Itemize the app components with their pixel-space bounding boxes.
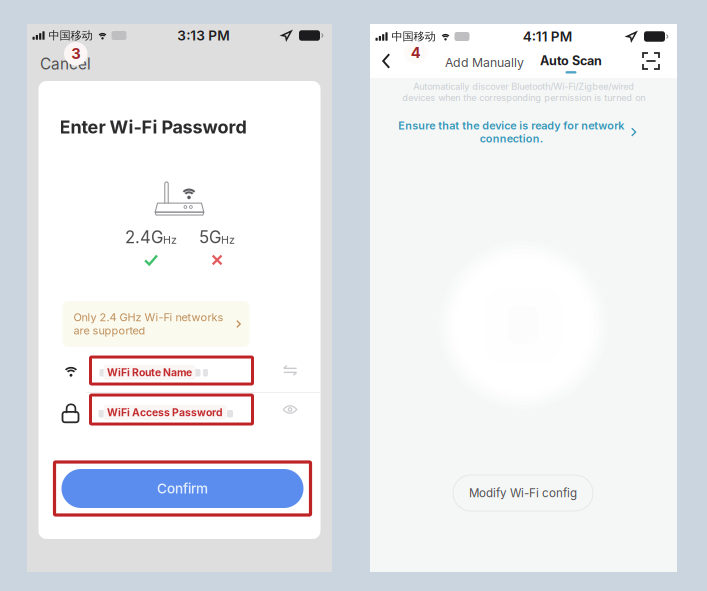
button[interactable]: Confirm (61, 469, 303, 508)
staticText: Cancel (40, 55, 91, 73)
staticText: Hz (221, 233, 235, 246)
staticText: Add Manually (445, 55, 524, 70)
staticText: 3:13 PM (177, 27, 230, 44)
staticText: Modify Wi-Fi config (469, 486, 577, 500)
staticText: Ensure that the device is ready for netw… (398, 119, 624, 145)
staticText: Only 2.4 GHz Wi-Fi networks are supporte… (73, 311, 223, 337)
staticText: WiFi Access Password (107, 406, 223, 419)
button[interactable]: Only 2.4 GHz Wi-Fi networks are supporte… (62, 301, 249, 347)
staticText: Confirm (157, 480, 208, 497)
staticText: 中国移动 (48, 28, 92, 42)
staticText: Automatically discover Bluetooth/Wi-Fi/Z… (402, 81, 645, 103)
staticText: Enter Wi-Fi Password (59, 116, 246, 138)
button[interactable]: Cancel (27, 48, 103, 80)
button[interactable]: Scan QR code (631, 45, 672, 77)
staticText: Hz (163, 233, 177, 246)
button[interactable]: Auto Scan (532, 48, 610, 74)
staticText: WiFi Route Name (107, 366, 192, 379)
staticText: 中国移动 (391, 29, 435, 43)
staticText: 4 (411, 44, 421, 62)
staticText: 3 (71, 45, 80, 63)
button[interactable]: Add Manually (438, 48, 531, 77)
staticText: 2.4G (125, 227, 163, 247)
button[interactable]: Back (370, 46, 401, 76)
staticText: 4:11 PM (523, 28, 573, 45)
staticText: 5G (199, 227, 221, 247)
button[interactable]: Modify Wi-Fi config (453, 475, 593, 511)
button[interactable]: Ensure that the device is ready for netw… (398, 119, 637, 145)
staticText: Auto Scan (540, 53, 602, 68)
